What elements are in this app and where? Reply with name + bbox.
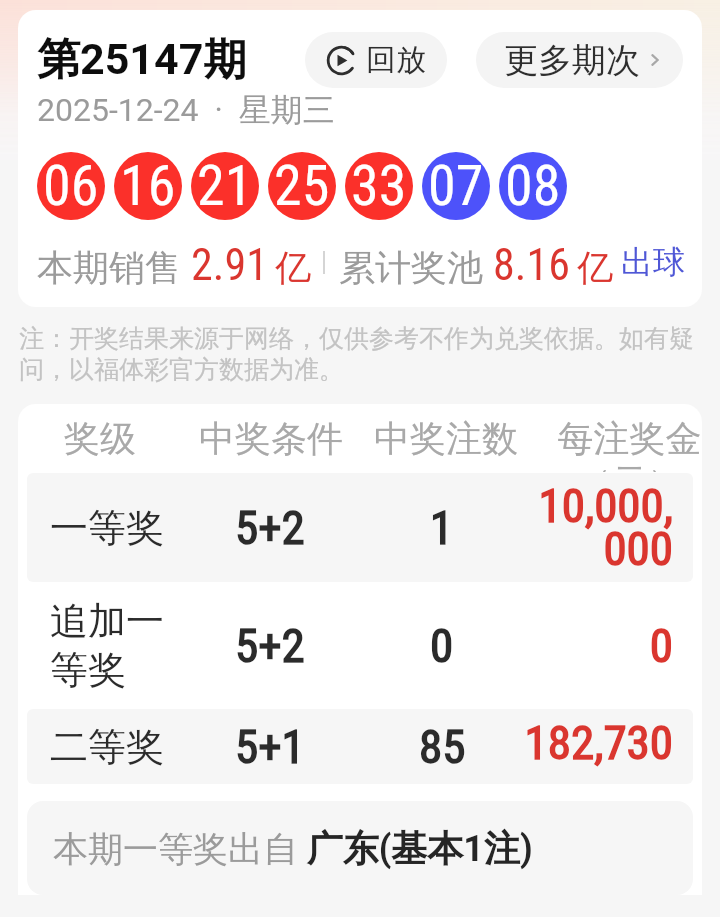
staticText: 07	[428, 153, 484, 219]
staticText: 追加一 等奖	[50, 597, 164, 694]
staticText: 二等奖	[50, 723, 164, 771]
button[interactable]: 更多期次	[476, 32, 683, 88]
button[interactable]: 21	[191, 152, 259, 220]
button[interactable]: 16	[114, 152, 182, 220]
staticText: 奖级	[64, 416, 136, 461]
button[interactable]: 追加一 等奖	[27, 582, 693, 709]
staticText: 16	[120, 153, 176, 219]
staticText: 回放	[366, 41, 426, 79]
button[interactable]: 06	[37, 152, 105, 220]
staticText: 5+1	[235, 719, 305, 774]
staticText: 5+2	[235, 618, 305, 673]
staticText: 本期一等奖出自 广东(基本1注)	[53, 826, 533, 871]
staticText: 21	[197, 153, 253, 219]
staticText: 08	[505, 153, 561, 219]
staticText: 0	[649, 618, 673, 673]
staticText: 33	[351, 153, 407, 219]
staticText: 5+2	[235, 500, 305, 555]
staticText: 累计奖池 8.16 亿	[339, 239, 614, 285]
button[interactable]: 出球	[621, 242, 685, 282]
staticText: 2025-12-24 · 星期三	[37, 90, 335, 130]
staticText: 更多期次	[504, 39, 640, 82]
staticText: 中奖注数	[374, 416, 518, 461]
button[interactable]: 本期一等奖出自 广东(基本1注)	[27, 801, 693, 895]
staticText: 1	[430, 500, 454, 555]
staticText: 182,730	[524, 715, 673, 770]
button[interactable]: 33	[345, 152, 413, 220]
staticText: 85	[419, 719, 466, 774]
staticText: 0	[430, 618, 454, 673]
staticText: 本期销售 2.91 亿	[37, 239, 312, 285]
staticText: 中奖条件	[199, 416, 343, 461]
staticText: 一等奖	[50, 504, 164, 552]
staticText: 每注奖金（元）	[557, 416, 702, 472]
button[interactable]: Replay	[305, 32, 447, 88]
button[interactable]: 25	[268, 152, 336, 220]
button[interactable]: 07	[422, 152, 490, 220]
staticText: 第25147期	[37, 33, 247, 87]
button[interactable]: 一等奖	[27, 473, 693, 582]
button[interactable]: 08	[499, 152, 567, 220]
staticText: 10,000, 000	[538, 478, 673, 577]
other: Replay	[326, 45, 357, 76]
staticText: 25	[274, 153, 330, 219]
button[interactable]: 二等奖	[27, 709, 693, 784]
staticText: 06	[43, 153, 99, 219]
staticText: 注：开奖结果来源于网络，仅供参考不作为兑奖依据。如有疑问，以福体彩官方数据为准。	[19, 323, 702, 386]
